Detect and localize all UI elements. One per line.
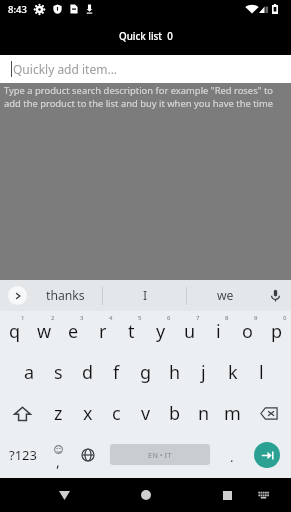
button[interactable]: p	[262, 311, 291, 352]
staticText: Type a product search description for ex…	[4, 84, 290, 110]
staticText: v	[141, 401, 151, 426]
button[interactable]: thanks	[35, 280, 95, 311]
button[interactable]: we	[195, 280, 255, 311]
staticText: x	[83, 401, 93, 426]
button[interactable]: Change language	[70, 434, 106, 475]
button[interactable]: h	[160, 352, 189, 393]
staticText: n	[198, 401, 210, 426]
button[interactable]: Backspace	[247, 393, 291, 434]
staticText: 1	[21, 314, 25, 322]
staticText: 9	[254, 314, 258, 322]
staticText: d	[82, 360, 94, 385]
staticText: ,	[56, 452, 60, 471]
button[interactable]: n	[189, 393, 218, 434]
staticText: r	[99, 319, 107, 344]
staticText: l	[259, 360, 264, 385]
button[interactable]: Enter	[254, 442, 280, 468]
button[interactable]: q	[0, 311, 30, 352]
button[interactable]: l	[247, 352, 276, 393]
staticText: m	[224, 401, 241, 426]
staticText: t	[128, 319, 135, 344]
button[interactable]: z	[44, 393, 73, 434]
button[interactable]: Expand suggestions	[8, 286, 27, 305]
button[interactable]: f	[102, 352, 131, 393]
button[interactable]: e	[59, 311, 88, 352]
button[interactable]: Quickly add item...	[0, 55, 291, 83]
button[interactable]: v	[131, 393, 160, 434]
staticText: h	[169, 360, 181, 385]
button[interactable]: c	[102, 393, 131, 434]
staticText: k	[228, 360, 238, 385]
button[interactable]: t	[117, 311, 146, 352]
staticText: we	[217, 287, 234, 304]
staticText: e	[68, 319, 79, 344]
button[interactable]: o	[233, 311, 262, 352]
staticText: EN • IT	[148, 450, 172, 460]
button[interactable]: g	[131, 352, 160, 393]
staticText: b	[169, 401, 181, 426]
staticText: j	[201, 360, 206, 385]
staticText: 5	[138, 314, 142, 322]
button[interactable]: a	[15, 352, 44, 393]
button[interactable]: k	[218, 352, 247, 393]
staticText: ?123	[9, 446, 37, 464]
staticText: i	[216, 319, 221, 344]
staticText: s	[54, 360, 63, 385]
button[interactable]: y	[146, 311, 175, 352]
button[interactable]: r	[88, 311, 117, 352]
button[interactable]: Shift	[0, 393, 44, 434]
staticText: p	[271, 319, 283, 344]
staticText: f	[113, 360, 120, 385]
button[interactable]: Voice input	[266, 286, 285, 305]
staticText: I	[143, 287, 148, 304]
staticText: u	[184, 319, 196, 344]
staticText: 6	[167, 314, 171, 322]
button[interactable]: Back	[46, 478, 82, 512]
button[interactable]: d	[73, 352, 102, 393]
staticText: y	[156, 319, 166, 344]
staticText: 3	[80, 314, 84, 322]
staticText: 8:43	[8, 3, 27, 16]
button[interactable]: Home	[128, 478, 164, 512]
button[interactable]: s	[44, 352, 73, 393]
button[interactable]: x	[73, 393, 102, 434]
button[interactable]: .	[214, 434, 250, 475]
staticText: Quick list 0	[119, 30, 173, 43]
button[interactable]: j	[189, 352, 218, 393]
button[interactable]: u	[175, 311, 204, 352]
staticText: a	[24, 360, 35, 385]
staticText: thanks	[46, 287, 85, 304]
staticText: w	[37, 319, 52, 344]
button[interactable]: w	[30, 311, 59, 352]
staticText: 7	[196, 314, 200, 322]
staticText: Quickly add item...	[13, 61, 118, 77]
button[interactable]: ?123	[0, 434, 46, 475]
button[interactable]: i	[204, 311, 233, 352]
staticText: g	[140, 360, 152, 385]
staticText: q	[9, 319, 21, 344]
button[interactable]: Hide keyboard	[255, 487, 271, 503]
staticText: 4	[109, 314, 113, 322]
staticText: 0	[283, 314, 287, 322]
staticText: z	[54, 401, 63, 426]
staticText: o	[242, 319, 253, 344]
button[interactable]: Recents	[209, 478, 245, 512]
button[interactable]: m	[218, 393, 247, 434]
staticText: c	[112, 401, 121, 426]
button[interactable]: b	[160, 393, 189, 434]
button[interactable]: EN • IT	[106, 434, 214, 475]
staticText: .	[230, 448, 234, 466]
staticText: 8	[225, 314, 229, 322]
button[interactable]: I	[115, 280, 175, 311]
button[interactable]: ,	[46, 434, 70, 475]
staticText: 2	[51, 314, 55, 322]
